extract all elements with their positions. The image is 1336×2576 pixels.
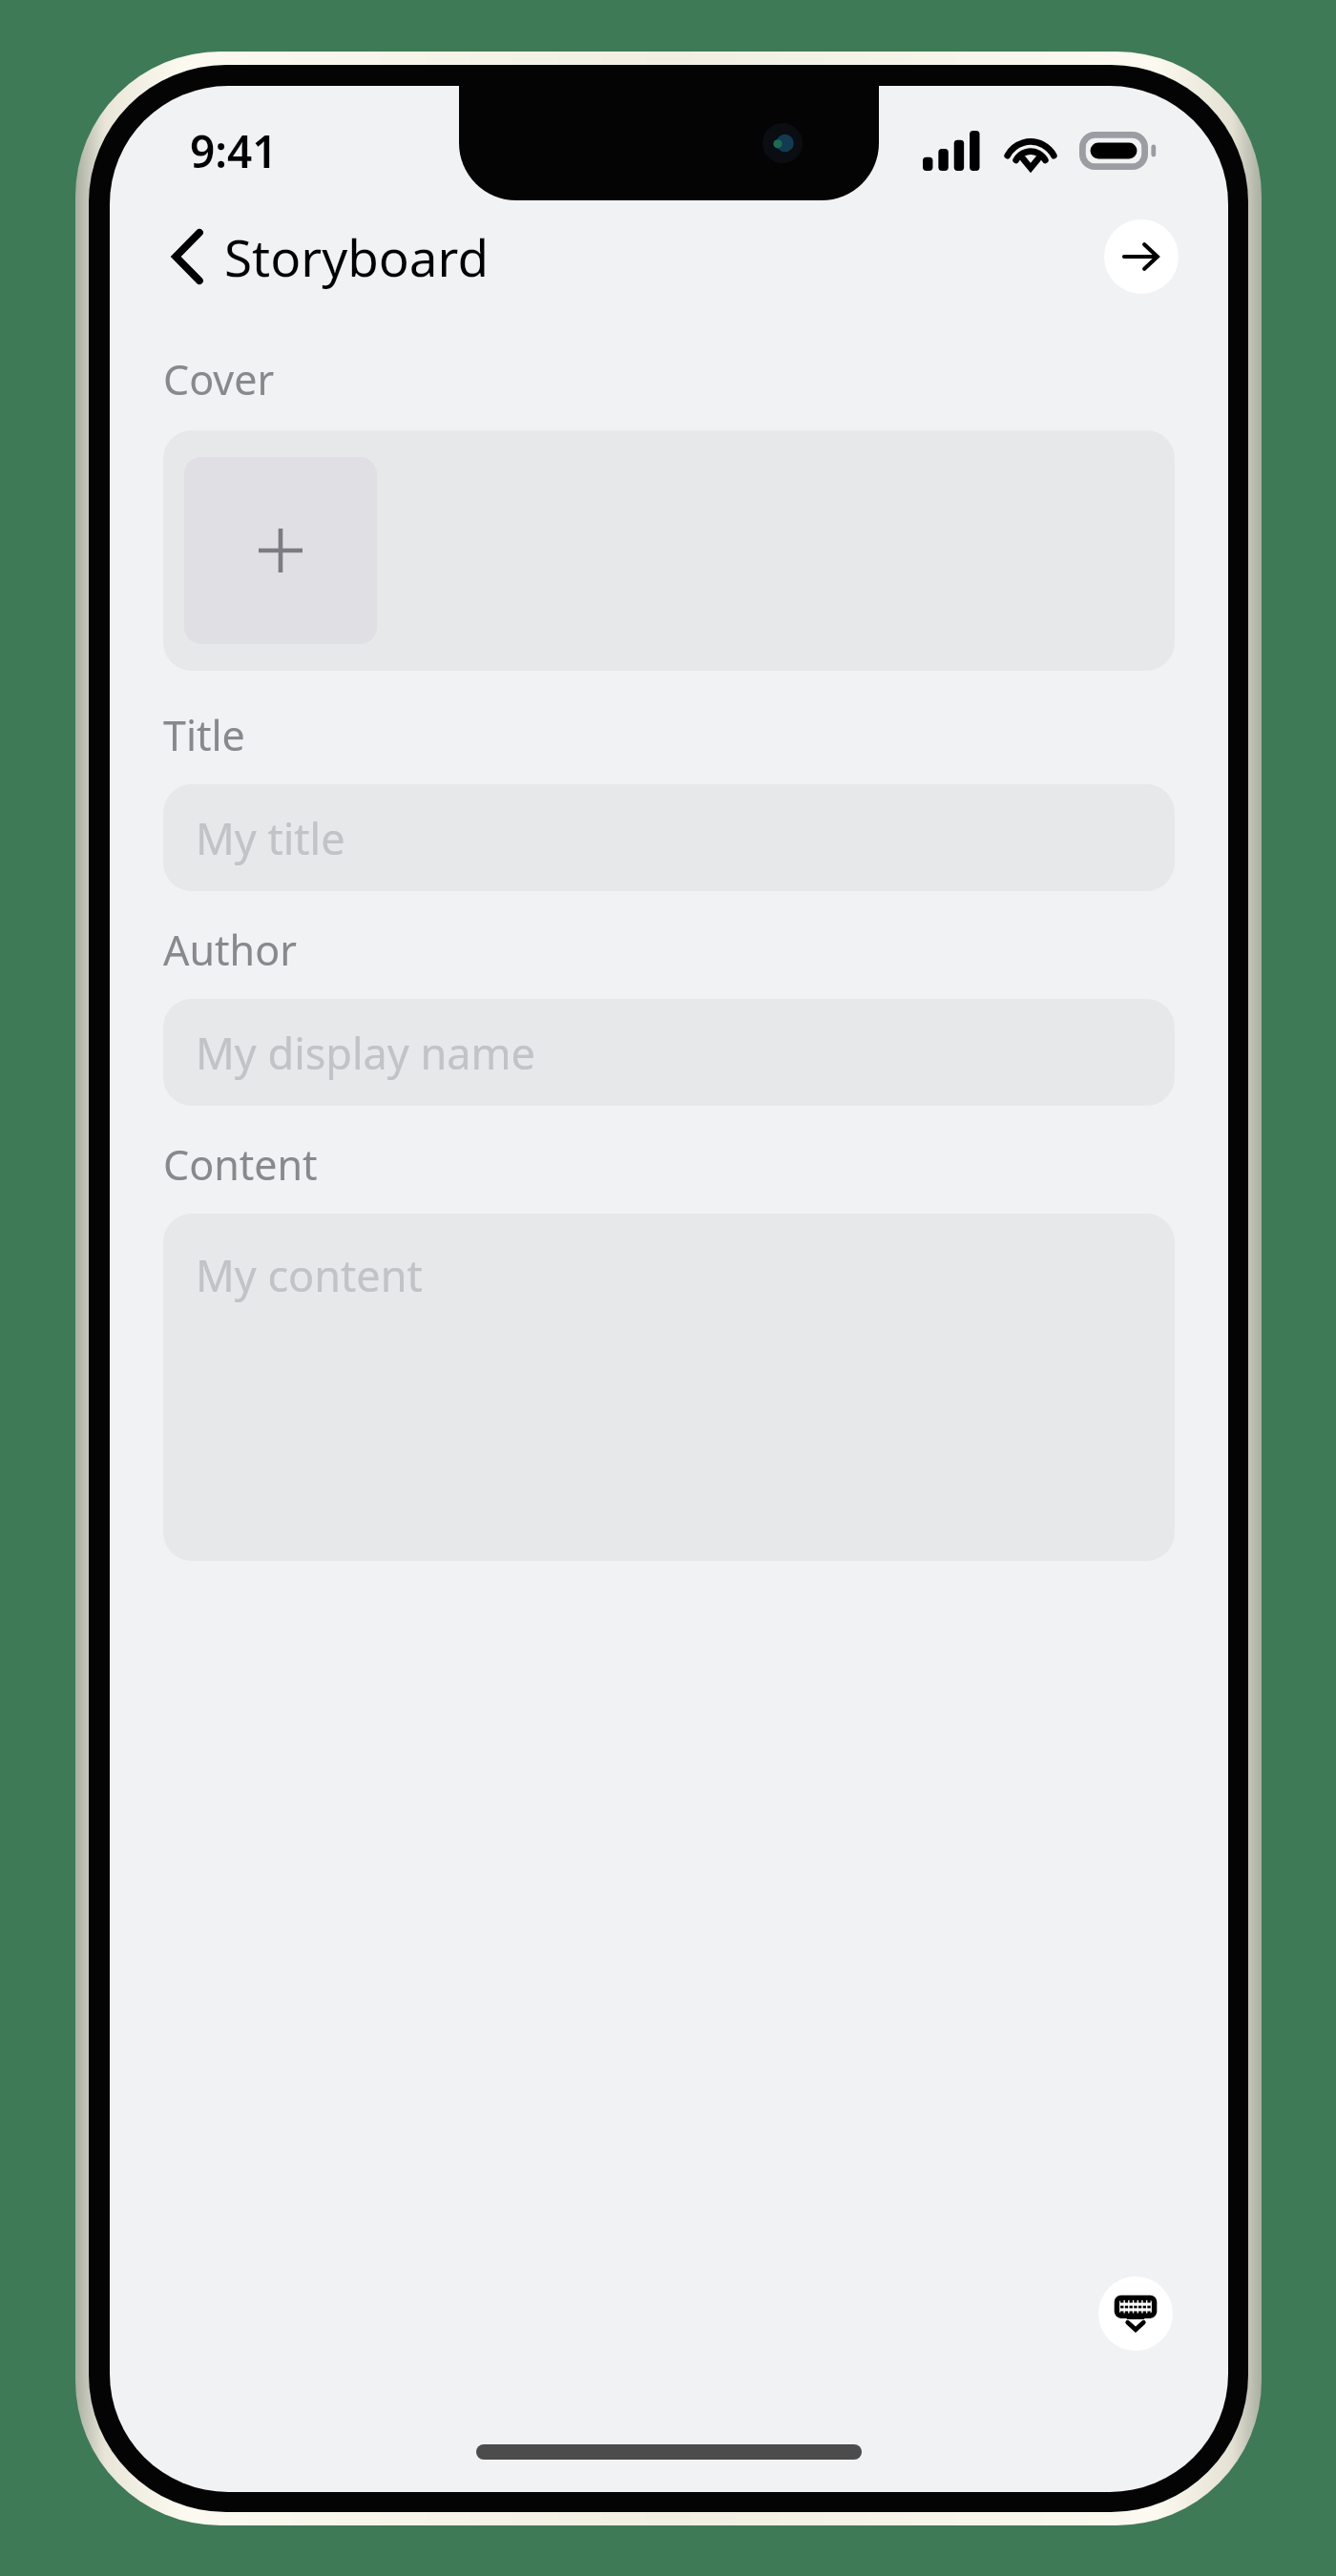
staticText: My title — [196, 809, 345, 867]
staticText: Cover — [163, 351, 275, 407]
staticText: Title — [163, 707, 245, 763]
button[interactable]: Add cover image — [184, 457, 377, 644]
button[interactable]: Storyboard — [159, 213, 499, 301]
staticText: Storyboard — [224, 222, 490, 291]
button[interactable]: Add cover image — [163, 430, 1175, 671]
button[interactable]: My display name — [163, 999, 1175, 1106]
staticText: Content — [163, 1136, 318, 1193]
button[interactable]: My title — [163, 784, 1175, 891]
button[interactable]: Next — [1104, 219, 1179, 294]
button[interactable]: Hide keyboard — [1098, 2276, 1173, 2351]
staticText: My display name — [196, 1024, 535, 1082]
staticText: Author — [163, 922, 297, 978]
staticText: 9:41 — [190, 121, 278, 181]
staticText: My content — [196, 1246, 423, 1304]
